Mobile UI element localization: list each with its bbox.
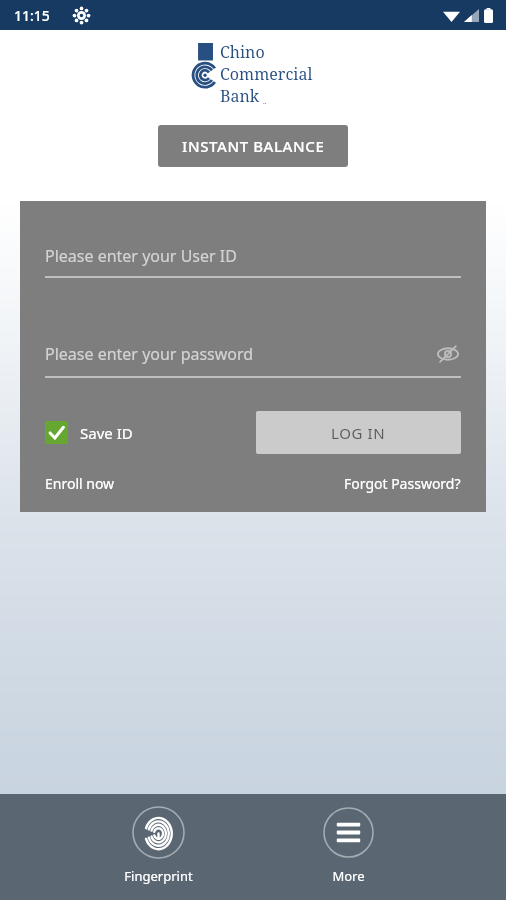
button[interactable]: Save ID (45, 421, 133, 444)
staticText: .. (263, 97, 267, 107)
staticText: Save ID (80, 423, 133, 443)
staticText: Please enter your User ID (45, 245, 461, 267)
button[interactable]: Fingerprint (63, 806, 253, 885)
button[interactable]: Forgot Password? (344, 474, 461, 493)
staticText: 11:15 (14, 6, 50, 25)
staticText: Bank (220, 85, 260, 107)
button[interactable]: Please enter your password (45, 341, 461, 378)
staticText: INSTANT BALANCE (182, 136, 325, 156)
button[interactable]: Enroll now (45, 474, 115, 493)
button[interactable]: More (253, 806, 443, 885)
staticText: Fingerprint (124, 867, 193, 885)
button[interactable]: Show password (435, 341, 461, 367)
staticText: LOG IN (331, 423, 386, 443)
staticText: Please enter your password (45, 343, 435, 365)
staticText: Commercial (220, 63, 313, 85)
button[interactable]: Please enter your User ID (45, 245, 461, 278)
staticText: Enroll now (45, 474, 115, 493)
staticText: Forgot Password? (344, 474, 461, 493)
staticText: Chino (220, 41, 265, 63)
staticText: More (332, 867, 365, 885)
button[interactable]: LOG IN (256, 411, 461, 454)
button[interactable]: INSTANT BALANCE (158, 125, 348, 167)
